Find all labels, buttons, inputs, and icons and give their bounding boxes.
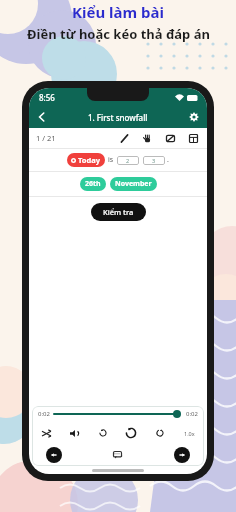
button[interactable]: Shuffle — [39, 426, 53, 440]
button[interactable]: Next — [174, 447, 190, 463]
button[interactable]: Comments — [109, 448, 127, 462]
staticText: . — [167, 155, 169, 165]
staticText: 26th — [85, 179, 101, 189]
button[interactable]: Forward 5 seconds — [153, 426, 167, 440]
staticText: 1. First snowfall — [88, 112, 148, 123]
staticText: 1 / 21 — [36, 133, 56, 143]
staticText: 3 — [152, 157, 156, 164]
button[interactable]: Hand tool — [140, 131, 154, 145]
staticText: 2 — [126, 157, 130, 164]
button[interactable]: Previous — [46, 447, 62, 463]
button[interactable]: Replay — [124, 426, 138, 440]
staticText: 1.0x — [184, 430, 195, 437]
button[interactable]: Kiểm tra — [91, 203, 146, 221]
button[interactable]: Rewind 5 seconds — [96, 426, 110, 440]
button[interactable]: Volume — [67, 426, 81, 440]
staticText: November — [115, 179, 152, 189]
button[interactable]: Today — [67, 153, 105, 167]
staticText: 0:02 — [186, 410, 198, 418]
staticText: 8:56 — [39, 92, 55, 103]
button[interactable]: Grid — [186, 131, 200, 145]
button[interactable]: 26th — [80, 177, 106, 191]
staticText: 0:02 — [38, 410, 50, 418]
button[interactable]: Back — [34, 109, 50, 125]
staticText: Kiểu làm bài — [72, 2, 164, 22]
staticText: Điền từ hoặc kéo thả đáp án — [27, 25, 210, 43]
button[interactable]: Settings — [186, 109, 202, 125]
staticText: Kiểm tra — [103, 207, 134, 217]
button[interactable]: 1.0x — [181, 426, 197, 440]
button[interactable]: November — [110, 177, 157, 191]
button[interactable]: Hide image — [163, 131, 177, 145]
button[interactable]: Edit — [117, 131, 131, 145]
staticText: is — [108, 155, 114, 165]
button[interactable]: 3 — [143, 156, 165, 165]
button[interactable]: 2 — [117, 156, 139, 165]
staticText: Today — [78, 155, 101, 165]
